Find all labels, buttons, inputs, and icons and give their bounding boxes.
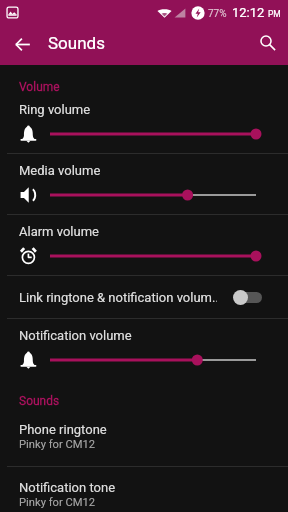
staticText: Ring volume	[19, 102, 91, 117]
button[interactable]: Phone ringtone	[0, 408, 288, 466]
button[interactable]: Ring volume	[0, 91, 288, 152]
button[interactable]: Notification tone	[0, 466, 288, 512]
staticText: Phone ringtone	[19, 422, 107, 437]
staticText: Alarm volume	[19, 224, 99, 239]
button[interactable]: Media volume	[0, 152, 288, 213]
staticText: Pinky for CM12	[19, 438, 96, 451]
button[interactable]: Navigate up	[0, 24, 44, 65]
staticText: Media volume	[19, 163, 101, 178]
staticText: Pinky for CM12	[19, 496, 96, 509]
staticText: Volume	[19, 80, 60, 94]
staticText: Notification tone	[19, 480, 116, 495]
button[interactable]: Search	[244, 24, 288, 65]
staticText: Notification volume	[19, 328, 132, 343]
staticText: 12:12	[232, 5, 265, 20]
staticText: Sounds	[48, 33, 105, 53]
button[interactable]: Alarm volume	[0, 213, 288, 274]
staticText: Sounds	[19, 394, 60, 408]
staticText: Link ringtone & notification volum..	[19, 290, 217, 305]
button[interactable]: Notification volume	[0, 317, 288, 378]
button[interactable]: Link ringtone & notification volum..	[0, 275, 288, 319]
staticText: 77%	[208, 8, 227, 20]
staticText: PM	[268, 9, 281, 19]
